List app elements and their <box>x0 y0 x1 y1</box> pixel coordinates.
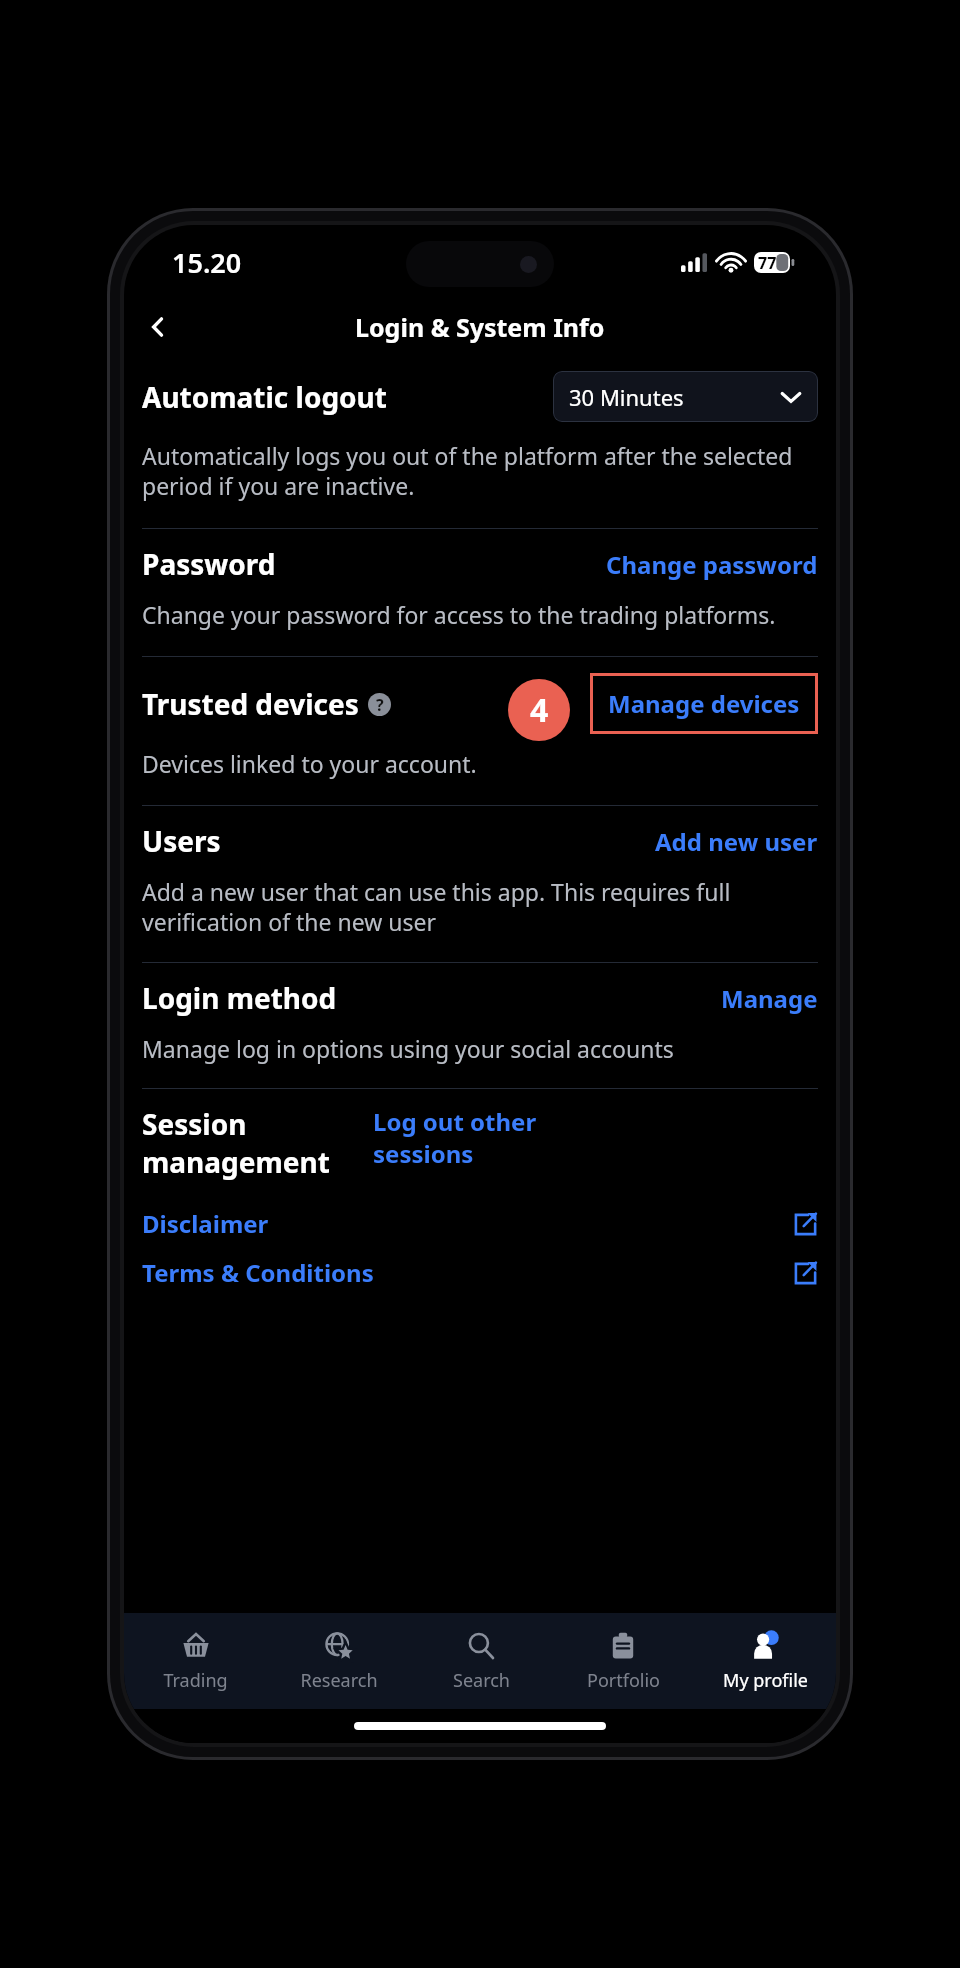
button[interactable]: Terms & Conditions <box>142 1256 818 1289</box>
staticText: Login method <box>142 979 337 1017</box>
staticText: Session management <box>142 1105 357 1181</box>
button[interactable]: Portfolio <box>552 1613 694 1709</box>
button[interactable]: Manage devices <box>590 673 818 734</box>
button[interactable]: Add new user <box>655 825 818 858</box>
staticText: Users <box>142 822 221 860</box>
staticText: Add new user <box>655 825 818 858</box>
staticText: 77 <box>758 252 777 273</box>
button[interactable]: Change password <box>606 548 818 581</box>
button[interactable]: Disclaimer <box>142 1207 818 1240</box>
button[interactable]: Log out other sessions <box>373 1105 818 1170</box>
staticText: 30 Minutes <box>569 382 684 412</box>
button[interactable]: Search <box>410 1613 552 1709</box>
staticText: 4 <box>530 688 549 732</box>
staticText: Devices linked to your account. <box>142 748 818 779</box>
staticText: Manage <box>721 982 818 1015</box>
staticText: Add a new user that can use this app. Th… <box>142 876 818 938</box>
staticText: My profile <box>723 1668 808 1693</box>
staticText: 15.20 <box>172 244 242 281</box>
button[interactable]: 30 Minutes <box>553 371 818 422</box>
staticText: Change your password for access to the t… <box>142 599 818 630</box>
staticText: Portfolio <box>587 1668 660 1693</box>
staticText: Automatic logout <box>142 378 553 416</box>
button[interactable]: Back <box>134 303 182 351</box>
button[interactable]: Research <box>267 1613 410 1709</box>
button[interactable]: Help <box>368 693 391 716</box>
staticText: Login & System Info <box>355 310 605 344</box>
staticText: Research <box>300 1668 378 1693</box>
staticText: ? <box>376 694 384 716</box>
staticText: Automatically logs you out of the platfo… <box>142 440 818 502</box>
staticText: Terms & Conditions <box>142 1256 792 1289</box>
staticText: Search <box>453 1668 510 1693</box>
staticText: Manage log in options using your social … <box>142 1033 818 1064</box>
button[interactable]: My profile <box>694 1613 836 1709</box>
staticText: Manage devices <box>608 687 800 720</box>
staticText: Trusted devices <box>142 685 359 723</box>
button[interactable]: Trading <box>124 1613 267 1709</box>
staticText: Log out other sessions <box>373 1105 563 1170</box>
staticText: Trading <box>163 1668 228 1693</box>
staticText: Change password <box>606 548 818 581</box>
staticText: Password <box>142 545 276 583</box>
staticText: Disclaimer <box>142 1207 792 1240</box>
button[interactable]: Manage <box>721 982 818 1015</box>
